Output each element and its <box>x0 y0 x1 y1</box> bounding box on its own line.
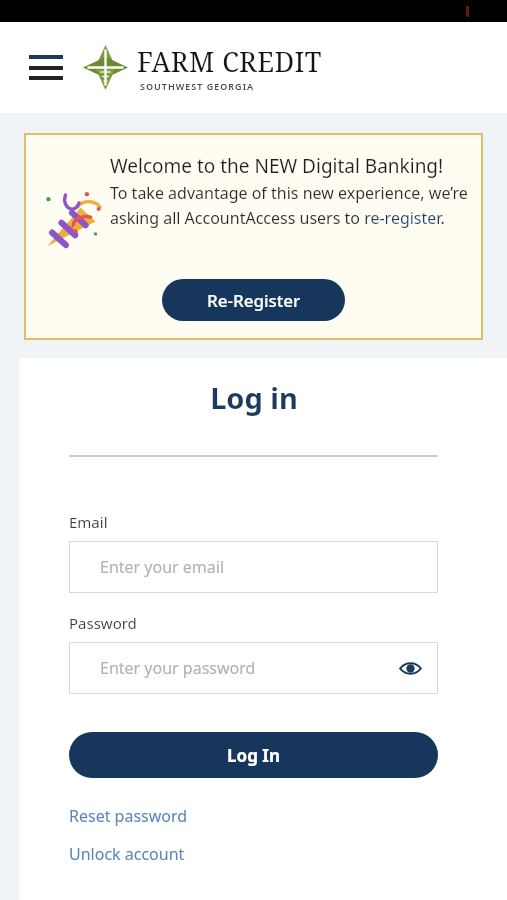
staticText: FARM CREDIT <box>137 43 322 80</box>
staticText: Email <box>69 512 108 532</box>
staticText: Unlock account <box>69 843 185 865</box>
staticText: Reset password <box>69 805 188 827</box>
staticText: Re-Register <box>207 289 301 312</box>
staticText: Enter your password <box>100 657 256 679</box>
button[interactable]: Reset password <box>69 805 438 827</box>
button[interactable]: Show password <box>394 652 426 684</box>
button[interactable]: Re-Register <box>162 279 345 321</box>
staticText: Welcome to the NEW Digital Banking! <box>110 153 444 179</box>
staticText: Enter your email <box>100 556 225 578</box>
staticText: To take advantage of this new experience… <box>110 182 473 228</box>
staticText: Password <box>69 613 137 633</box>
staticText: SOUTHWEST GEORGIA <box>140 80 255 92</box>
staticText: Log In <box>227 744 280 767</box>
button[interactable]: Log In <box>69 732 438 778</box>
button[interactable]: Unlock account <box>69 843 438 865</box>
button[interactable]: Enter your password <box>69 642 438 694</box>
button[interactable]: Open navigation menu <box>26 52 66 83</box>
button[interactable]: Enter your email <box>69 541 438 593</box>
staticText: Log in <box>210 378 298 417</box>
